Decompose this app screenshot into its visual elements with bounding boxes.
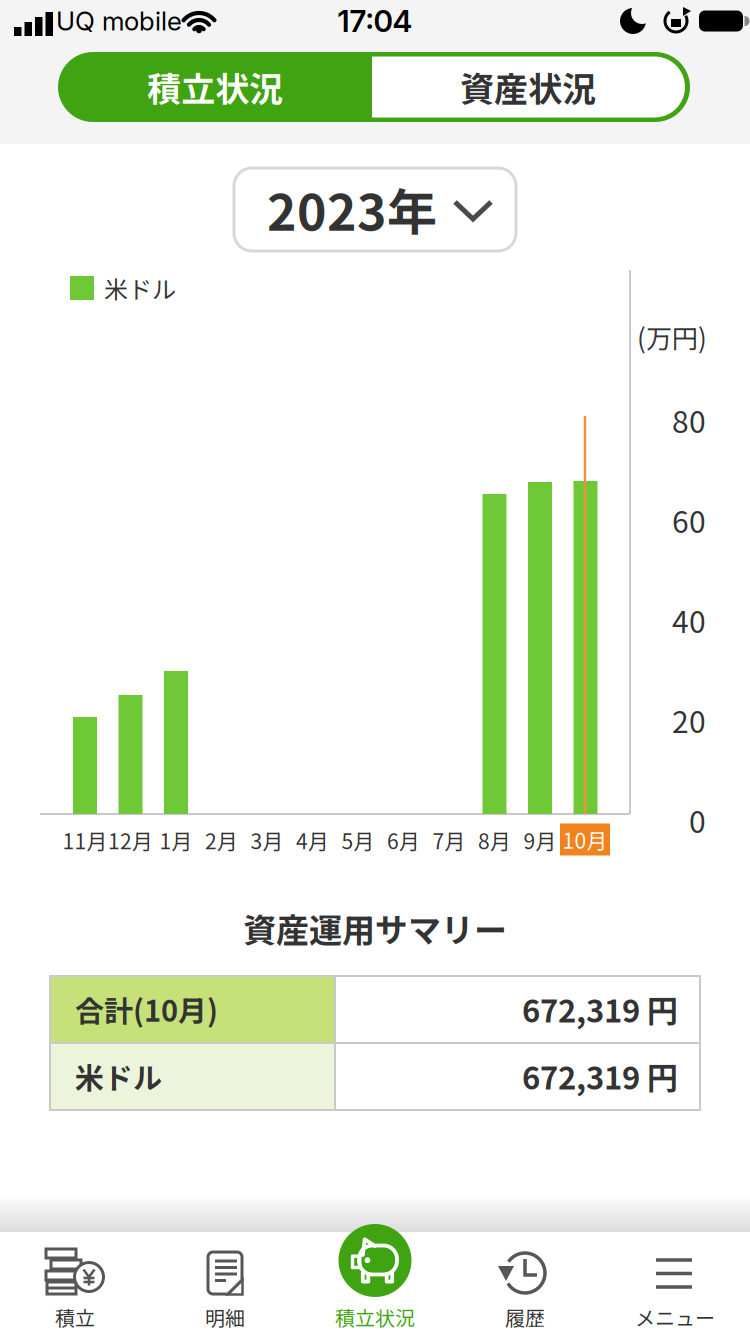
staticText: 履歴 — [505, 1302, 545, 1331]
staticText: 672,319 円 — [522, 1054, 678, 1098]
button[interactable]: 履歴 — [450, 1232, 600, 1334]
button[interactable]: 2023年 — [234, 168, 516, 251]
staticText: 1月 — [159, 825, 192, 855]
staticText: 60 — [672, 498, 706, 542]
staticText: 7月 — [432, 825, 465, 855]
staticText: 40 — [672, 598, 706, 642]
staticText: 米ドル — [75, 1055, 162, 1097]
button[interactable]: メニュー — [600, 1232, 750, 1334]
staticText: 2月 — [205, 825, 238, 855]
button[interactable]: 明細 — [150, 1232, 300, 1334]
staticText: 672,319 円 — [522, 987, 678, 1031]
button[interactable]: 積立状況 — [58, 52, 690, 122]
button[interactable]: 積立 — [0, 1232, 150, 1334]
staticText: 2023年 — [267, 173, 437, 245]
staticText: 資産状況 — [460, 62, 596, 112]
staticText: 11月 — [62, 825, 107, 855]
staticText: 6月 — [387, 825, 420, 855]
staticText: 明細 — [205, 1302, 245, 1331]
staticText: 80 — [672, 398, 706, 442]
staticText: 5月 — [341, 825, 374, 855]
staticText: 積立状況 — [335, 1302, 415, 1331]
staticText: 10月 — [562, 824, 607, 855]
staticText: 4月 — [296, 825, 329, 855]
staticText: 合計(10月) — [75, 988, 218, 1030]
staticText: 8月 — [478, 825, 511, 855]
staticText: 17:04 — [337, 3, 412, 39]
staticText: 積立 — [55, 1302, 95, 1331]
staticText: (万円) — [637, 318, 707, 356]
staticText: 米ドル — [104, 271, 176, 305]
staticText: メニュー — [635, 1302, 715, 1331]
button[interactable]: 積立状況 — [300, 1224, 450, 1334]
staticText: 9月 — [523, 825, 556, 855]
staticText: 3月 — [250, 825, 283, 855]
staticText: 20 — [672, 698, 706, 742]
staticText: 資産運用サマリー — [243, 904, 507, 952]
staticText: 12月 — [108, 825, 153, 855]
staticText: 0 — [689, 798, 706, 842]
staticText: 積立状況 — [147, 62, 283, 112]
staticText: UQ mobile — [56, 5, 182, 37]
